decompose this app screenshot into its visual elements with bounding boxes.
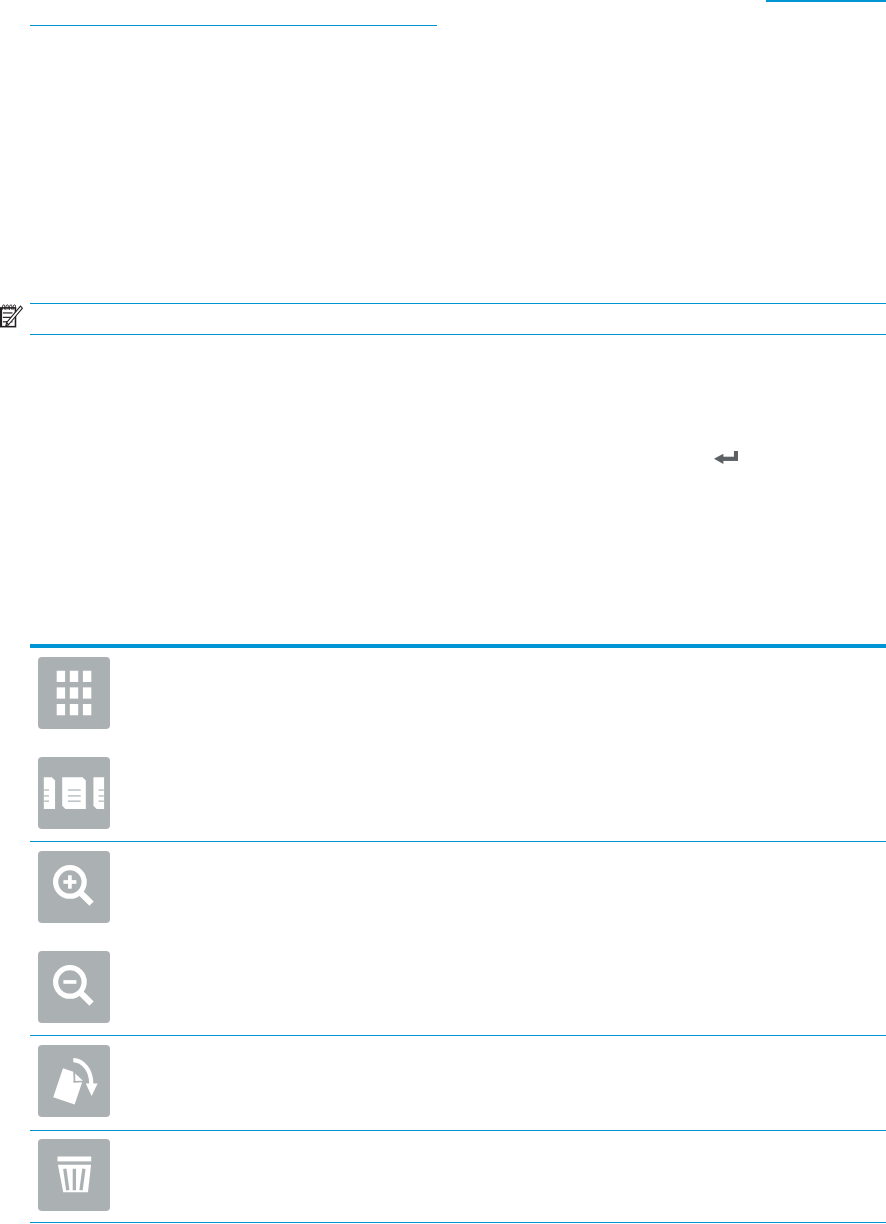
button[interactable]: Pages bbox=[38, 757, 110, 829]
button[interactable]: Delete bbox=[38, 1139, 110, 1211]
other: Note bbox=[0, 303, 24, 331]
button[interactable]: Zoom in bbox=[38, 851, 110, 923]
button[interactable]: Rotate page bbox=[38, 1045, 110, 1117]
button[interactable]: Keypad bbox=[38, 657, 110, 729]
other: Enter bbox=[714, 451, 738, 464]
button[interactable]: Zoom out bbox=[38, 951, 110, 1023]
